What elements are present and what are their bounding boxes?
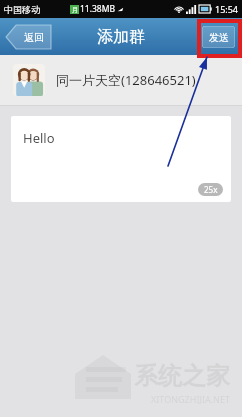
staticText: 15:54 <box>215 3 239 15</box>
button[interactable]: 发送 <box>202 26 235 48</box>
button[interactable]: 同一片天空(128646521) <box>0 55 242 105</box>
staticText: 添加群 <box>97 27 145 47</box>
staticText: 系统之家 <box>134 361 230 391</box>
staticText: 月 <box>72 6 78 14</box>
staticText: 返回 <box>24 31 44 44</box>
staticText: 同一片天空(128646521) <box>56 71 196 89</box>
staticText: 11.38MB <box>80 3 115 15</box>
staticText: 发送 <box>209 31 229 44</box>
button[interactable]: Hello <box>11 116 231 202</box>
staticText: XITONGZHIJIA.NET <box>151 393 230 405</box>
staticText: 中国移动 <box>4 4 40 15</box>
staticText: Hello <box>23 129 55 147</box>
staticText: 25x <box>204 184 218 195</box>
button[interactable]: 返回 <box>6 25 54 49</box>
